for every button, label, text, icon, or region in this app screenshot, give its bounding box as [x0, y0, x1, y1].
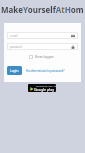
button[interactable]: Login: [7, 66, 22, 75]
button[interactable]: password: [7, 43, 78, 50]
staticText: Google play: [34, 87, 55, 92]
staticText: MakeYourselfAtHome: [1, 4, 85, 15]
staticText: Rimani loggato: [35, 55, 54, 59]
button[interactable]: e-mail: [7, 32, 78, 39]
staticText: e-mail: [10, 34, 18, 38]
button[interactable]: Rimani loggato: [29, 54, 54, 60]
staticText: Login: [10, 69, 19, 73]
button[interactable]: Hai dimenticato la password?: [26, 66, 65, 75]
staticText: Hai dimenticato la password?: [26, 69, 65, 73]
button[interactable]: Get it on Google Play: [28, 84, 56, 92]
staticText: ANDROID APP ON: [36, 85, 56, 88]
staticText: password: [10, 45, 22, 49]
